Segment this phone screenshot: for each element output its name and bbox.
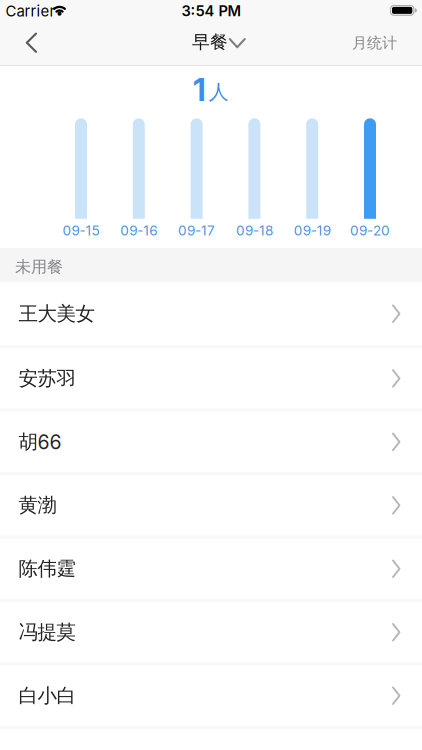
staticText: 冯提莫	[18, 620, 75, 644]
button[interactable]: 陈伟霆	[0, 539, 422, 599]
staticText: 人	[209, 79, 229, 105]
staticText: 月统计	[352, 33, 397, 52]
button[interactable]: 王大美女	[0, 282, 422, 345]
staticText: 白小白	[18, 683, 75, 708]
staticText: 安苏羽	[18, 366, 75, 391]
staticText: 黄渤	[18, 493, 56, 518]
button[interactable]: 白小白	[0, 666, 422, 726]
button[interactable]: 冯提莫	[0, 602, 422, 662]
staticText: 09-17	[178, 222, 215, 239]
button[interactable]: Back	[0, 20, 56, 65]
staticText: 3:54 PM	[181, 2, 241, 20]
button[interactable]: 黄渤	[0, 475, 422, 535]
staticText: 王大美女	[18, 301, 94, 326]
staticText: 09-16	[120, 222, 157, 239]
staticText: 陈伟霆	[18, 556, 75, 581]
staticText: Carrier	[5, 2, 55, 20]
button[interactable]: 月统计	[339, 20, 409, 65]
button[interactable]: 早餐	[173, 20, 246, 65]
staticText: 09-19	[294, 222, 331, 239]
staticText: 09-20	[350, 222, 390, 239]
staticText: 09-18	[236, 222, 273, 239]
button[interactable]: 胡66	[0, 412, 422, 472]
staticText: 早餐	[192, 31, 228, 53]
button[interactable]: 安苏羽	[0, 348, 422, 408]
staticText: 未用餐	[15, 257, 63, 277]
staticText: 09-15	[62, 222, 99, 239]
staticText: 胡66	[18, 430, 61, 454]
staticText: 1	[193, 71, 206, 109]
